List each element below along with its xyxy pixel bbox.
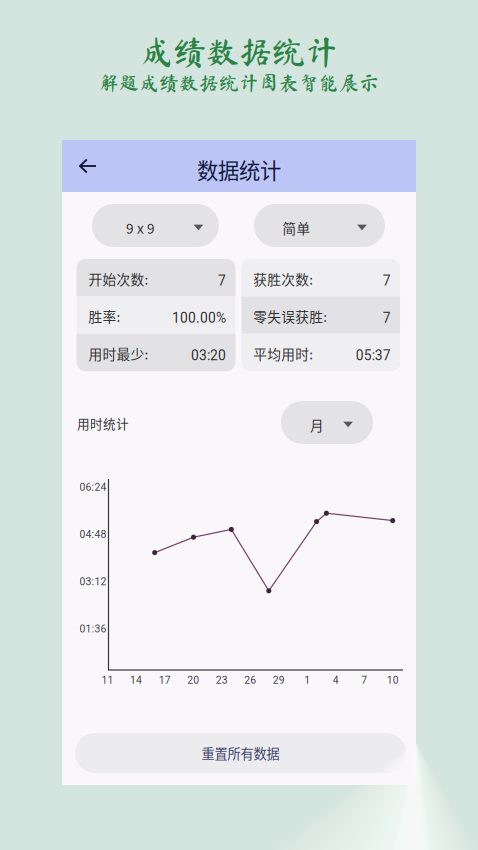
staticText: 03:20 [191, 347, 226, 364]
staticText: 用时统计 [77, 414, 129, 432]
button[interactable]: 简单 [254, 204, 385, 247]
staticText: 零失误获胜: [253, 306, 327, 326]
staticText: 1 [304, 674, 310, 686]
staticText: 获胜次数: [253, 269, 313, 289]
staticText: 05:37 [356, 347, 391, 364]
staticText: 29 [273, 674, 285, 686]
button[interactable]: 月 [281, 401, 373, 444]
staticText: 用时最少: [88, 344, 148, 363]
staticText: 10 [387, 674, 399, 686]
staticText: 23 [216, 674, 228, 686]
staticText: 06:24 [80, 481, 107, 493]
staticText: 平均用时: [253, 344, 313, 363]
staticText: 胜率: [88, 306, 120, 326]
staticText: 重置所有数据 [201, 743, 279, 762]
staticText: 26 [244, 674, 256, 686]
staticText: 11 [102, 674, 114, 686]
staticText: 月 [310, 415, 324, 435]
button[interactable]: Back [62, 140, 114, 192]
staticText: 17 [159, 674, 171, 686]
button[interactable]: 重置所有数据 [75, 733, 406, 773]
staticText: 100.00% [172, 310, 226, 326]
staticText: 开始次数: [88, 269, 148, 289]
staticText: 简单 [282, 218, 310, 238]
staticText: 20 [187, 674, 199, 686]
staticText: 成绩数据统计 [140, 35, 338, 68]
button[interactable]: 9 x 9 [92, 204, 219, 247]
staticText: 7 [361, 674, 367, 686]
staticText: 9 x 9 [126, 218, 155, 238]
staticText: 解题成绩数据统计图表智能展示 [99, 73, 379, 93]
staticText: 7 [218, 273, 226, 289]
staticText: 7 [383, 273, 391, 289]
staticText: 03:12 [80, 576, 107, 588]
staticText: 01:36 [80, 623, 107, 635]
staticText: 4 [333, 674, 339, 686]
staticText: 数据统计 [197, 154, 281, 185]
staticText: 14 [130, 674, 142, 686]
staticText: 7 [383, 310, 391, 326]
staticText: 04:48 [80, 528, 107, 540]
